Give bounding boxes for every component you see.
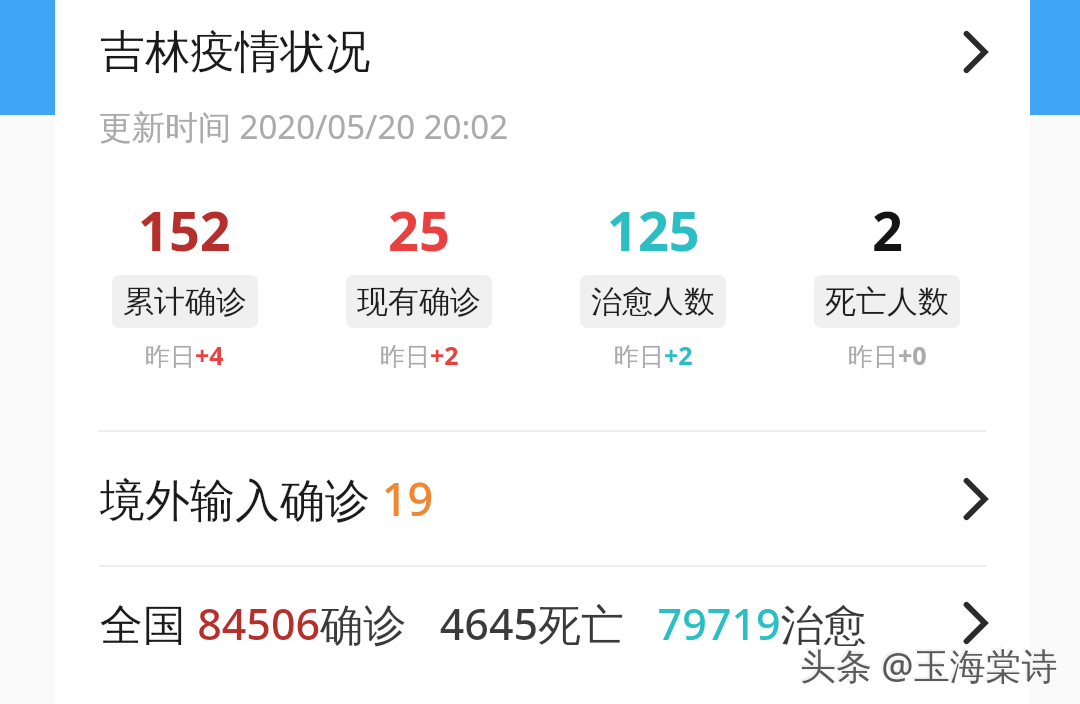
staticText: 25 bbox=[388, 193, 450, 267]
button[interactable]: 全国 84506确诊 4645死亡 79719治愈 bbox=[55, 567, 1030, 679]
button[interactable]: 125 bbox=[536, 193, 770, 372]
staticText: 头条 @玉海棠诗 bbox=[798, 639, 1056, 688]
button[interactable]: 境外输入确诊 19 bbox=[55, 432, 1030, 565]
staticText: 昨日+0 bbox=[848, 338, 927, 372]
staticText: 2 bbox=[872, 193, 903, 267]
other: 全国疫情详情 bbox=[952, 599, 1000, 647]
staticText: 昨日+2 bbox=[614, 338, 693, 372]
button[interactable]: 152 bbox=[67, 193, 302, 372]
staticText: 昨日+4 bbox=[145, 338, 224, 372]
staticText: 治愈人数 bbox=[591, 282, 715, 321]
other: 查看吉林疫情详情 bbox=[952, 28, 1000, 76]
staticText: 昨日+2 bbox=[380, 338, 459, 372]
staticText: 累计确诊 bbox=[123, 282, 247, 321]
other: 境外输入确诊详情 bbox=[952, 475, 1000, 523]
staticText: 全国 84506确诊 4645死亡 79719治愈 bbox=[100, 594, 867, 653]
staticText: 152 bbox=[138, 193, 231, 267]
staticText: 吉林疫情状况 bbox=[100, 24, 370, 81]
button[interactable]: 2 bbox=[770, 193, 1004, 372]
button[interactable]: 25 bbox=[302, 193, 536, 372]
staticText: 现有确诊 bbox=[357, 282, 481, 321]
staticText: 死亡人数 bbox=[825, 282, 949, 321]
staticText: 境外输入确诊 19 bbox=[100, 468, 434, 529]
staticText: 125 bbox=[607, 193, 700, 267]
staticText: 头条 @玉海棠诗 bbox=[800, 641, 1058, 690]
button[interactable]: 吉林疫情状况 bbox=[55, 0, 1030, 104]
staticText: 更新时间 2020/05/20 20:02 bbox=[99, 104, 509, 149]
